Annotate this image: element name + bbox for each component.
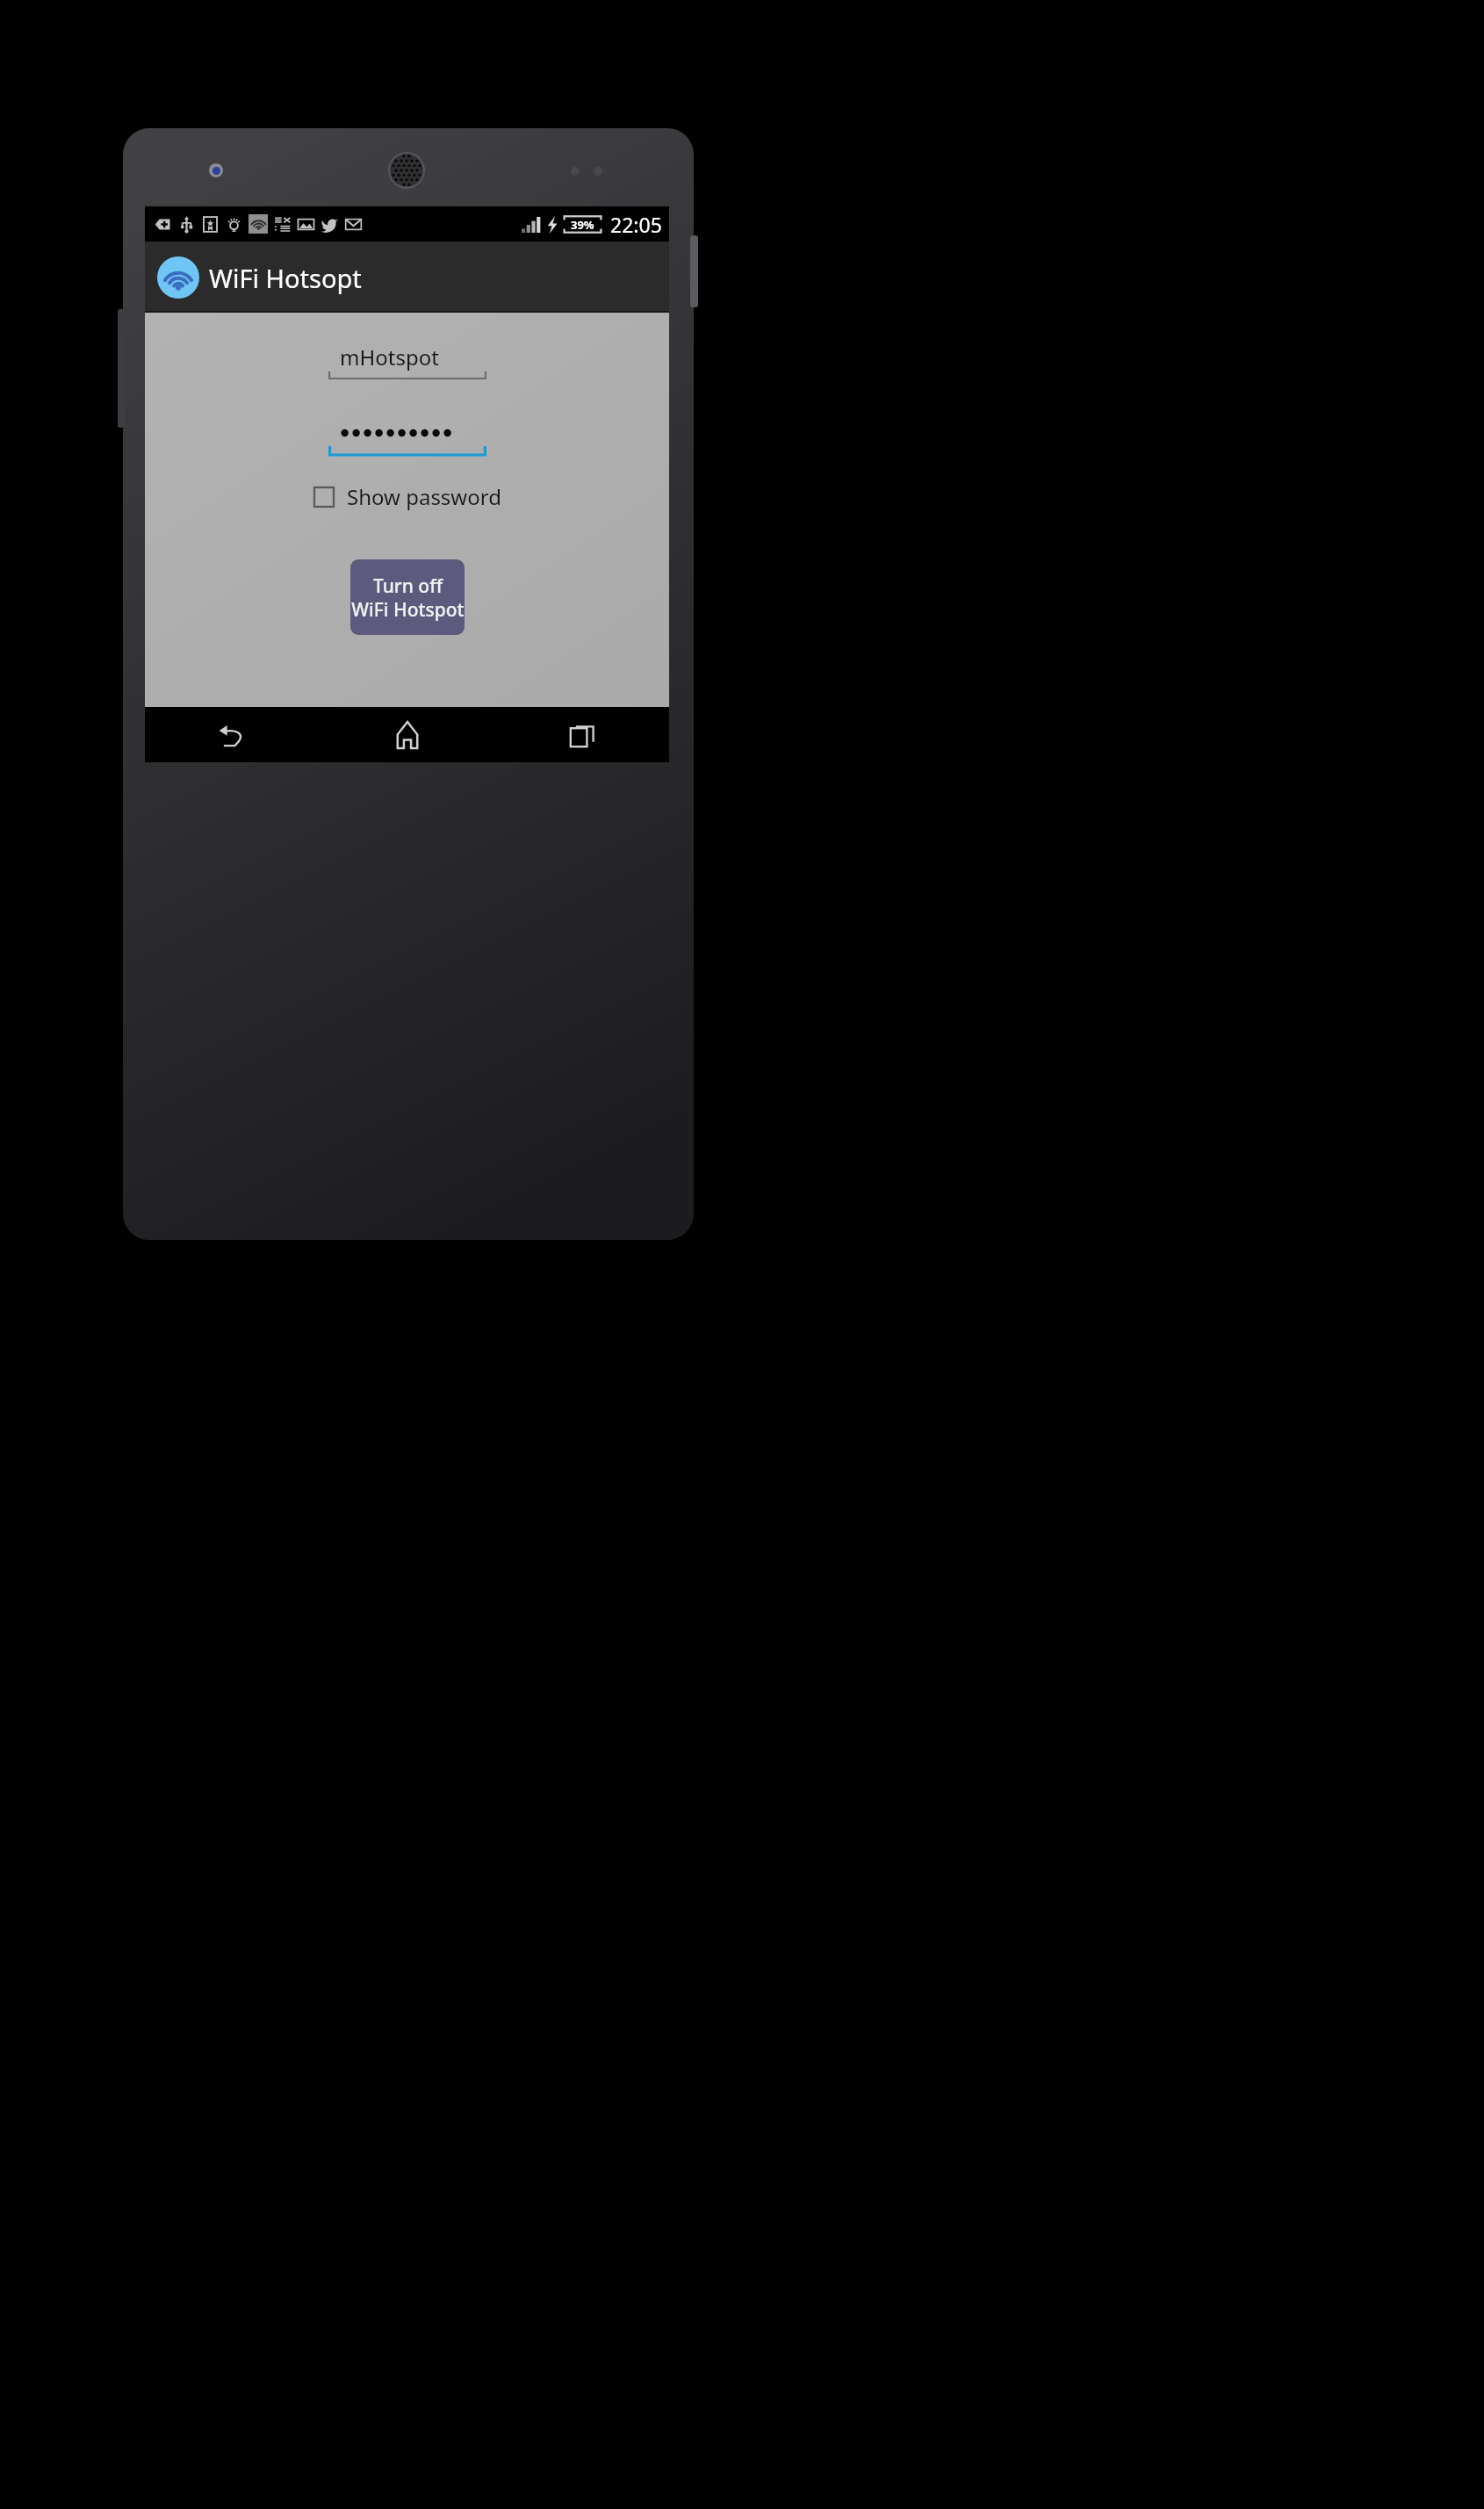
staticText: WiFi Hotsopt bbox=[209, 261, 362, 295]
staticText: Turn off WiFi Hotspot bbox=[351, 573, 465, 622]
staticText: 39% bbox=[571, 217, 594, 233]
button[interactable]: Show password bbox=[310, 479, 505, 514]
button[interactable]: Back bbox=[145, 707, 320, 762]
staticText: mHotspot bbox=[340, 342, 439, 371]
staticText: Show password bbox=[347, 482, 501, 511]
button[interactable]: Recent apps bbox=[494, 707, 669, 762]
button[interactable]: Turn off WiFi Hotspot bbox=[350, 559, 465, 635]
staticText: 22:05 bbox=[610, 211, 662, 238]
button[interactable]: mHotspot bbox=[328, 342, 486, 381]
button[interactable] bbox=[328, 418, 486, 458]
button[interactable]: Home bbox=[320, 707, 494, 762]
